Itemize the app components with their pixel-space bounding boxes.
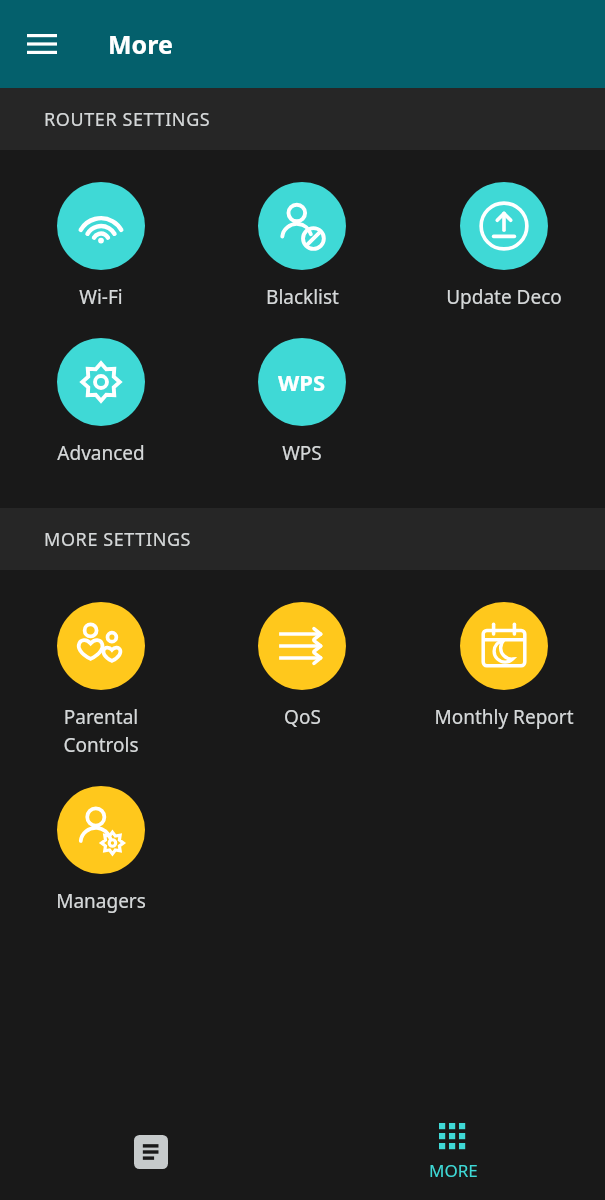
button[interactable]: QoS bbox=[201, 598, 403, 730]
staticText: Update Deco bbox=[446, 284, 562, 310]
staticText: WPS bbox=[282, 440, 322, 466]
button[interactable]: Update Deco bbox=[403, 178, 605, 310]
staticText: Advanced bbox=[57, 440, 145, 466]
staticText: More bbox=[108, 27, 173, 61]
staticText: Parental Controls bbox=[63, 704, 139, 758]
button[interactable]: Wi-Fi bbox=[0, 178, 201, 310]
staticText: Wi-Fi bbox=[79, 284, 123, 310]
staticText: QoS bbox=[284, 704, 321, 730]
button[interactable]: Blacklist bbox=[201, 178, 403, 310]
button[interactable]: Menu bbox=[12, 14, 72, 74]
staticText: Managers bbox=[56, 888, 146, 914]
staticText: Blacklist bbox=[266, 284, 339, 310]
button[interactable]: WPS bbox=[201, 334, 403, 466]
button[interactable]: Monthly Report bbox=[403, 598, 605, 730]
staticText: ROUTER SETTINGS bbox=[44, 107, 211, 132]
button[interactable]: MORE bbox=[302, 1104, 605, 1200]
button[interactable]: Advanced bbox=[0, 334, 201, 466]
staticText: WPS bbox=[278, 367, 326, 397]
button[interactable]: Parental Controls bbox=[0, 598, 201, 758]
button[interactable]: Overview bbox=[0, 1104, 302, 1200]
staticText: MORE bbox=[429, 1159, 478, 1182]
staticText: MORE SETTINGS bbox=[44, 527, 192, 552]
staticText: Monthly Report bbox=[434, 704, 574, 730]
button[interactable]: Managers bbox=[0, 782, 201, 914]
